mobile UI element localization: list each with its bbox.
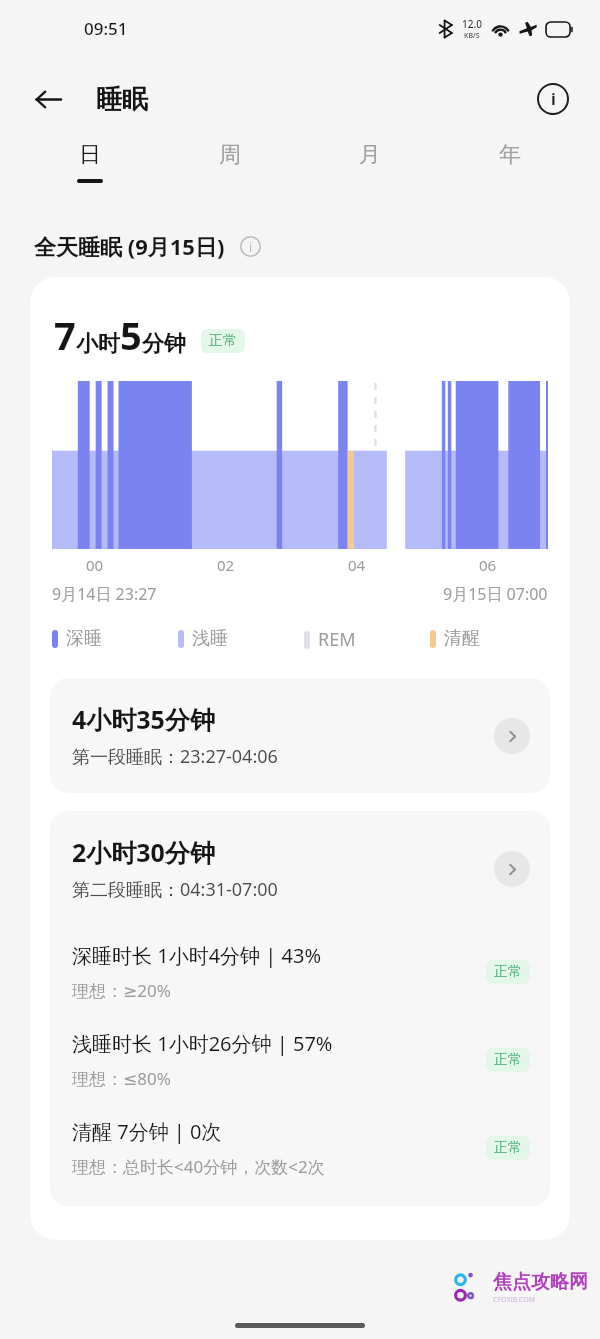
staticText: 5 bbox=[120, 309, 142, 361]
button[interactable]: 清醒 7分钟 | 0次 bbox=[50, 1098, 550, 1186]
staticText: 2小时30分钟 bbox=[72, 835, 215, 869]
staticText: 浅睡时长 1小时26分钟 | 57% bbox=[72, 1030, 333, 1057]
staticText: 正常 bbox=[494, 963, 522, 981]
staticText: 09:51 bbox=[84, 17, 128, 40]
staticText: 02 bbox=[217, 555, 235, 575]
staticText: 周 bbox=[219, 141, 241, 169]
button[interactable]: 深睡时长 1小时4分钟 | 43% bbox=[50, 922, 550, 1010]
staticText: 理想：总时长<40分钟，次数<2次 bbox=[72, 1155, 325, 1178]
staticText: 正常 bbox=[494, 1051, 522, 1069]
staticText: 清醒 bbox=[444, 627, 480, 650]
staticText: 9月14日 23:27 bbox=[52, 583, 157, 605]
staticText: 小时 bbox=[76, 330, 120, 358]
staticText: 第二段睡眠：04:31-07:00 bbox=[72, 877, 278, 902]
button[interactable]: 周 bbox=[160, 141, 300, 205]
button[interactable]: 4小时35分钟 bbox=[50, 678, 550, 793]
button[interactable]: 日 bbox=[20, 141, 160, 205]
staticText: 正常 bbox=[494, 1139, 522, 1157]
staticText: CFOXIB.COM bbox=[493, 1295, 535, 1305]
staticText: 清醒 7分钟 | 0次 bbox=[72, 1118, 222, 1145]
staticText: 第一段睡眠：23:27-04:06 bbox=[72, 744, 278, 769]
staticText: 深睡时长 1小时4分钟 | 43% bbox=[72, 942, 321, 969]
staticText: 正常 bbox=[209, 332, 237, 350]
staticText: 12.0 bbox=[462, 17, 482, 31]
staticText: 7 bbox=[54, 309, 76, 361]
staticText: 理想：≤80% bbox=[72, 1067, 171, 1090]
staticText: 日 bbox=[79, 141, 101, 169]
button[interactable]: Information bbox=[530, 76, 576, 122]
staticText: 00 bbox=[86, 555, 104, 575]
button[interactable]: 浅睡时长 1小时26分钟 | 57% bbox=[50, 1010, 550, 1098]
staticText: 9月15日 07:00 bbox=[443, 583, 548, 605]
button[interactable]: 年 bbox=[440, 141, 580, 205]
staticText: 睡眠 bbox=[96, 83, 148, 116]
staticText: 分钟 bbox=[142, 330, 186, 358]
staticText: i bbox=[249, 239, 253, 255]
staticText: REM bbox=[318, 627, 356, 652]
button[interactable]: Back bbox=[24, 75, 72, 123]
other: Open details bbox=[494, 851, 530, 887]
staticText: 深睡 bbox=[66, 627, 102, 650]
staticText: i bbox=[551, 88, 556, 110]
button[interactable]: 月 bbox=[300, 141, 440, 205]
staticText: 04 bbox=[348, 555, 366, 575]
staticText: 浅睡 bbox=[192, 627, 228, 650]
staticText: 月 bbox=[359, 141, 381, 169]
button[interactable]: 2小时30分钟 bbox=[50, 811, 550, 922]
other: Open details bbox=[494, 718, 530, 754]
button[interactable]: About all-day sleep bbox=[236, 232, 264, 260]
staticText: 理想：≥20% bbox=[72, 979, 171, 1002]
staticText: 4小时35分钟 bbox=[72, 702, 215, 736]
staticText: 焦点攻略网 bbox=[493, 1270, 588, 1294]
staticText: 全天睡眠 (9月15日) bbox=[34, 231, 225, 261]
staticText: 06 bbox=[479, 555, 497, 575]
staticText: 年 bbox=[499, 141, 521, 169]
staticText: KB/S bbox=[464, 31, 480, 41]
